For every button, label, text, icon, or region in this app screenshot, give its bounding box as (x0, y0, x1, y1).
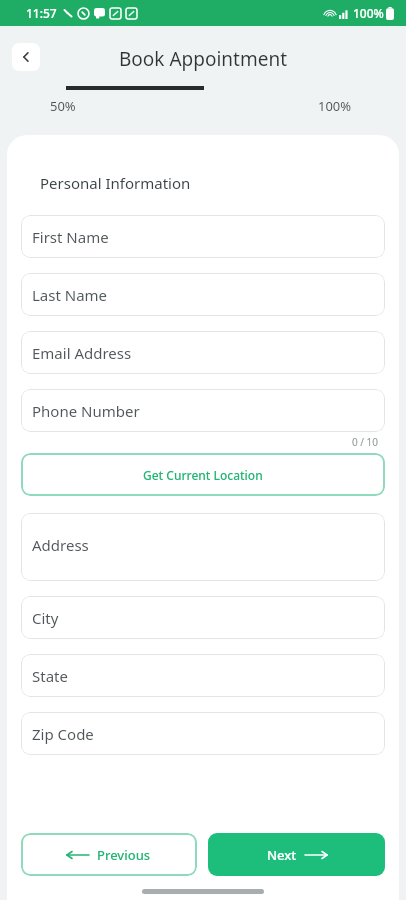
button[interactable]: Get Current Location (21, 453, 385, 496)
staticText: Previous (97, 846, 151, 864)
staticText: Email Address (32, 343, 132, 363)
staticText: State (32, 666, 68, 686)
staticText: Next (267, 846, 297, 864)
staticText: City (32, 608, 59, 628)
staticText: 0 / 10 (7, 435, 378, 449)
staticText: Zip Code (32, 724, 94, 744)
staticText: 11:57 (26, 5, 57, 21)
staticText: Last Name (32, 285, 108, 305)
button[interactable]: Email Address (21, 331, 385, 374)
staticText: Get Current Location (143, 467, 263, 483)
staticText: Address (32, 535, 89, 555)
button[interactable]: State (21, 654, 385, 697)
button[interactable]: Zip Code (21, 712, 385, 755)
button[interactable]: Address (21, 513, 385, 581)
button[interactable]: Back (12, 43, 40, 71)
staticText: 100% (353, 5, 384, 21)
button[interactable]: Phone Number (21, 389, 385, 432)
button[interactable]: Previous (21, 833, 197, 876)
button[interactable]: City (21, 596, 385, 639)
staticText: Book Appointment (0, 46, 406, 72)
button[interactable]: First Name (21, 215, 385, 258)
staticText: Phone Number (32, 401, 140, 421)
staticText: 50% (50, 97, 76, 115)
staticText: 100% (318, 97, 352, 115)
button[interactable]: Next (208, 833, 385, 876)
staticText: First Name (32, 227, 109, 247)
staticText: Personal Information (40, 173, 191, 193)
button[interactable]: Last Name (21, 273, 385, 316)
